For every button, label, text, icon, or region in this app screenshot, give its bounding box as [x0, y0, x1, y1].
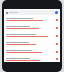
button[interactable]: Search: [5, 10, 59, 15]
button[interactable]: [4, 16, 60, 24]
button[interactable]: [4, 56, 60, 62]
button[interactable]: [4, 24, 60, 32]
button[interactable]: [4, 40, 60, 48]
button[interactable]: [4, 48, 60, 56]
button[interactable]: [4, 32, 60, 40]
